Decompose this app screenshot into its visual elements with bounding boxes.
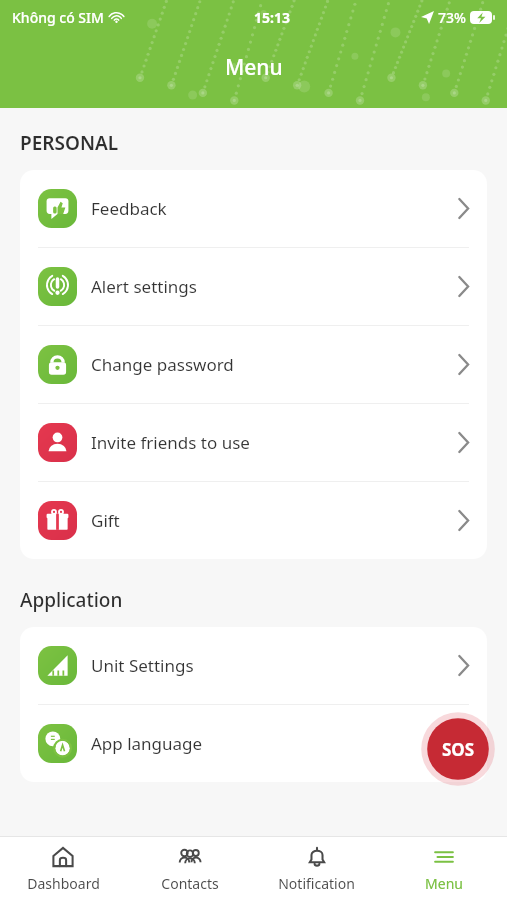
staticText: Contacts [161,874,219,893]
staticText: Feedback [91,197,167,220]
staticText: Không có SIM [12,8,104,27]
staticText: Gift [91,509,120,532]
staticText: Invite friends to use [91,431,250,454]
button[interactable]: Unit Settings [20,627,487,705]
button[interactable]: Dashboard [0,837,126,900]
staticText: 73% [438,8,466,27]
staticText: Alert settings [91,275,197,298]
button[interactable]: Feedback [20,170,487,248]
button[interactable]: SOS emergency [418,709,498,789]
button[interactable]: App language [20,705,487,782]
staticText: Unit Settings [91,654,194,677]
staticText: 15:13 [254,8,290,27]
button[interactable]: Notification [253,837,380,900]
staticText: App language [91,732,203,755]
staticText: Application [20,587,123,613]
button[interactable]: Change password [20,326,487,404]
button[interactable]: Invite friends to use [20,404,487,482]
staticText: SOS [442,738,475,761]
staticText: Change password [91,353,234,376]
button[interactable]: Alert settings [20,248,487,326]
button[interactable]: Contacts [126,837,253,900]
button[interactable]: Gift [20,482,487,559]
staticText: Menu [425,874,463,893]
staticText: PERSONAL [20,130,119,156]
staticText: Dashboard [27,874,100,893]
button[interactable]: Menu [380,837,507,900]
staticText: Notification [278,874,355,893]
staticText: Menu [225,53,283,82]
